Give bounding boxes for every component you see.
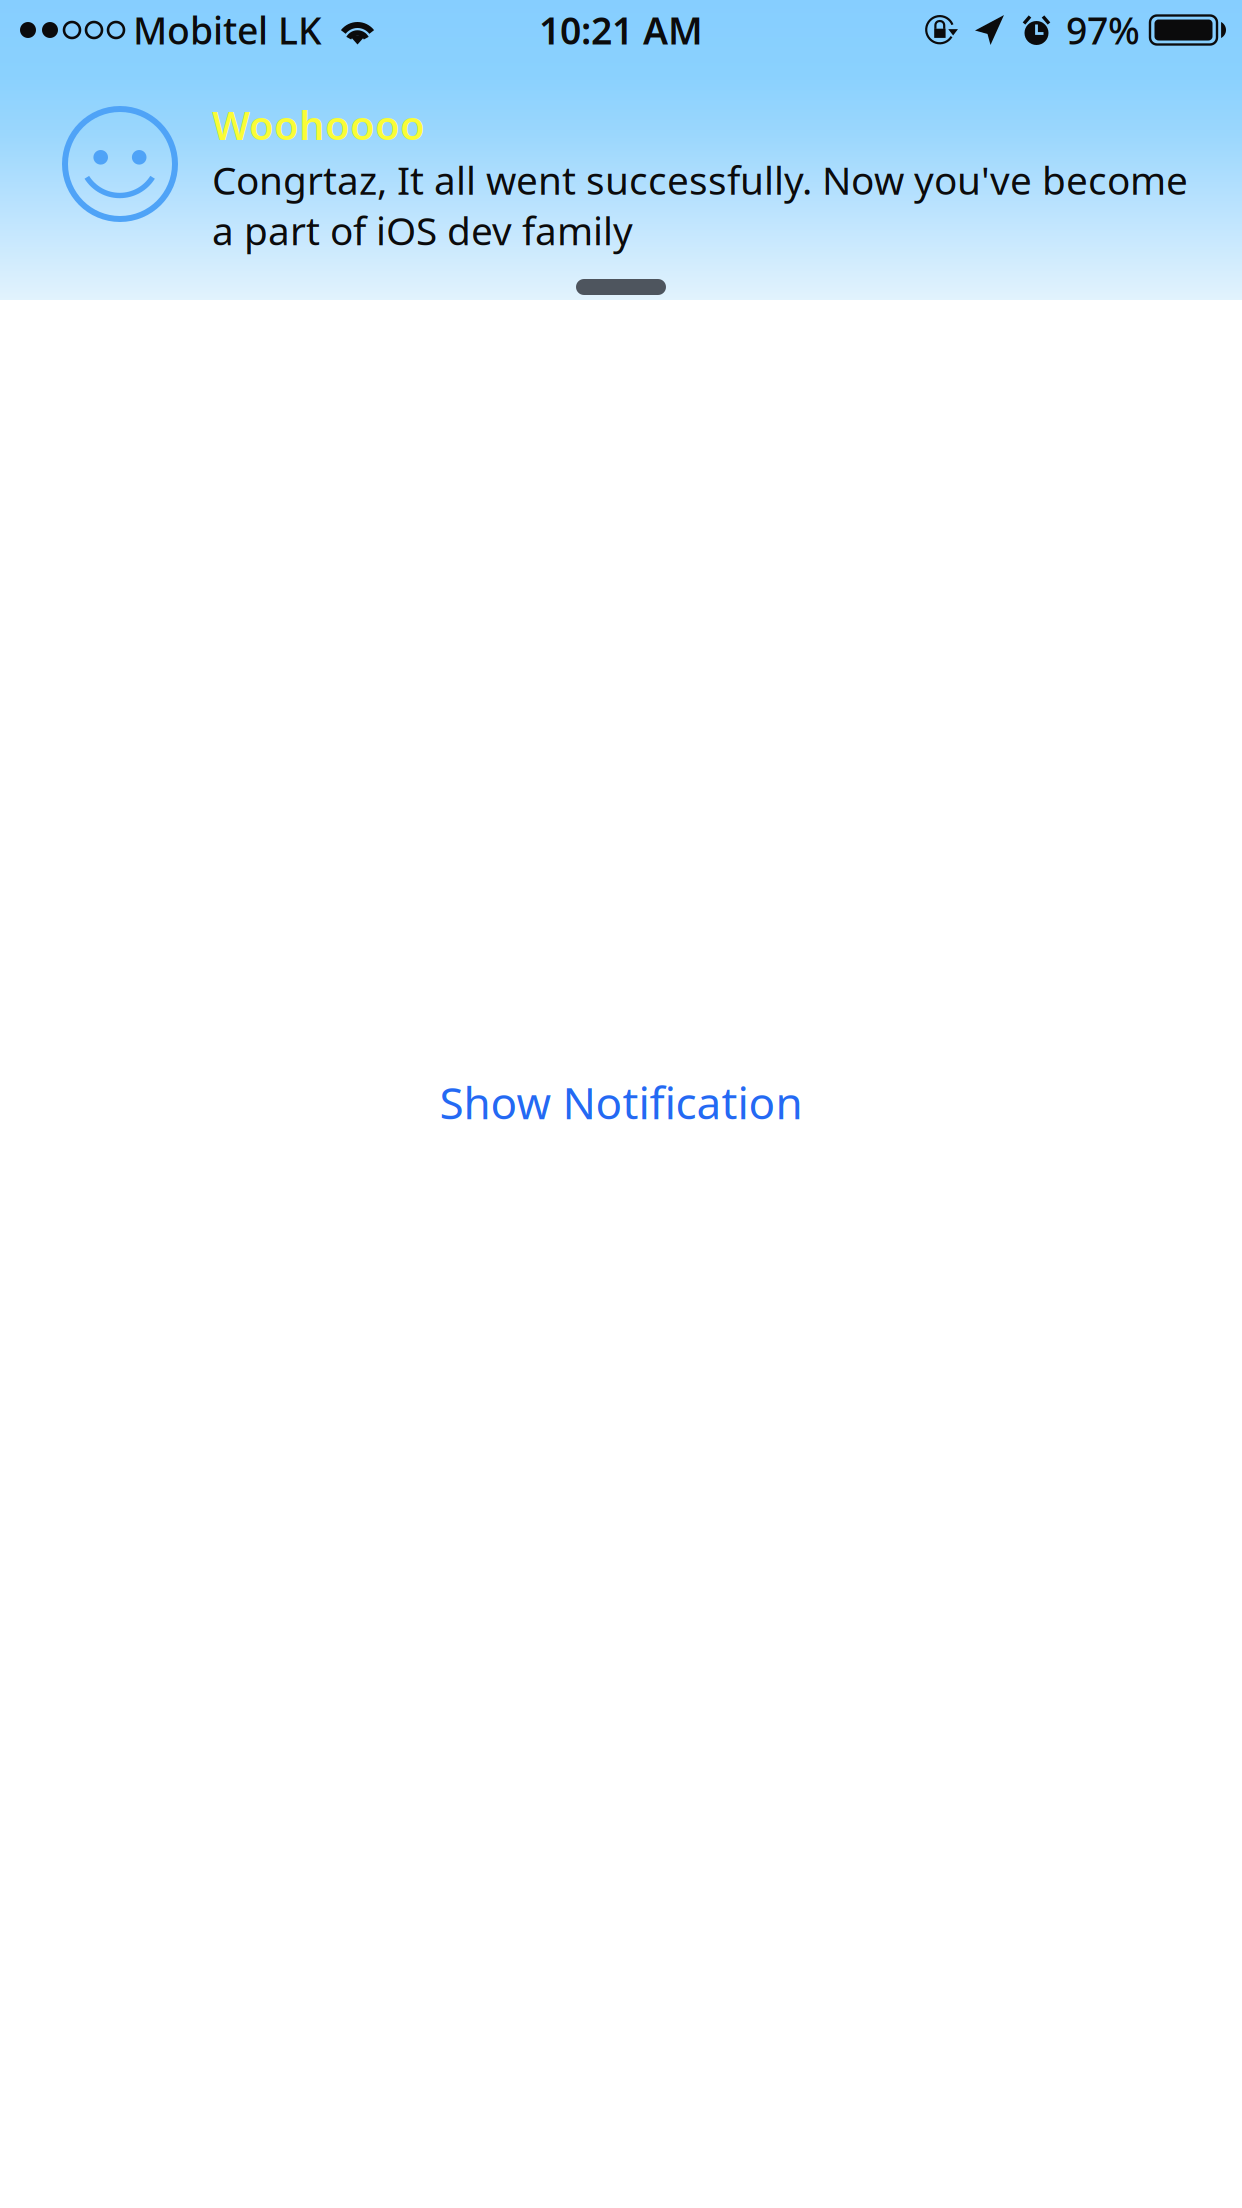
staticText: 97%: [1066, 5, 1140, 55]
button[interactable]: Show Notification: [413, 1057, 828, 1147]
staticText: Show Notification: [439, 1073, 802, 1131]
staticText: Congrtaz, It all went successfully. Now …: [212, 154, 1188, 256]
button[interactable]: Woohoooo: [0, 60, 1242, 256]
button[interactable]: Pull down notification: [536, 261, 706, 300]
staticText: Woohoooo: [212, 98, 425, 151]
staticText: 10:21 AM: [539, 5, 703, 55]
staticText: Mobitel LK: [133, 5, 322, 55]
